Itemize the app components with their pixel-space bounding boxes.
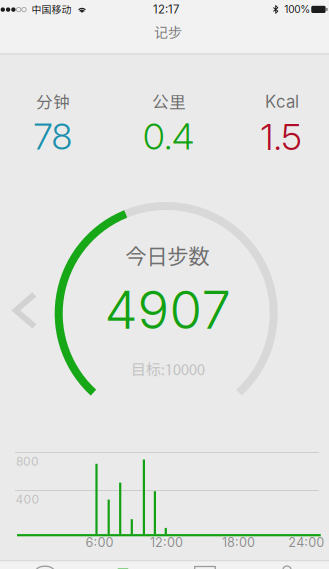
staticText: 12:17 — [153, 2, 179, 16]
staticText: 400 — [15, 492, 39, 507]
staticText: 6:00 — [85, 535, 113, 550]
button[interactable]: Previous day — [5, 286, 45, 334]
staticText: 78 — [33, 114, 72, 158]
staticText: 24:00 — [288, 535, 324, 550]
staticText: 分钟 — [36, 92, 70, 112]
staticText: 0.4 — [143, 114, 194, 158]
staticText: 100% — [284, 3, 310, 15]
staticText: 公里 — [152, 92, 186, 112]
staticText: 4907 — [104, 278, 230, 341]
button[interactable]: Profile — [279, 565, 294, 569]
staticText: 1.5 — [260, 115, 301, 159]
staticText: 中国移动 — [31, 4, 71, 15]
button[interactable]: Steps — [33, 565, 56, 569]
staticText: 今日步数 — [125, 244, 209, 269]
staticText: 记步 — [154, 24, 182, 41]
staticText: Kcal — [265, 92, 299, 112]
staticText: 18:00 — [222, 535, 255, 550]
button[interactable]: Records — [194, 565, 216, 569]
staticText: 目标:10000 — [131, 360, 205, 378]
staticText: 12:00 — [150, 535, 183, 550]
button[interactable]: Map — [117, 565, 129, 569]
staticText: 800 — [16, 454, 39, 469]
